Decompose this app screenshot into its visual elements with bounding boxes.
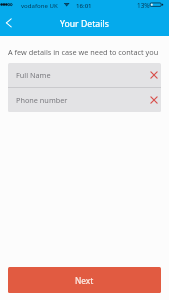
button[interactable]: Next bbox=[8, 267, 161, 293]
button[interactable]: Back bbox=[0, 11, 22, 36]
staticText: vodafone UK bbox=[21, 1, 58, 9]
staticText: Full Name bbox=[16, 70, 51, 80]
staticText: A few details in case we need to contact… bbox=[8, 47, 159, 57]
staticText: Next bbox=[75, 275, 94, 286]
staticText: Your Details bbox=[60, 18, 109, 30]
staticText: 13% bbox=[137, 1, 150, 10]
button[interactable]: Clear Phone number bbox=[147, 88, 161, 112]
button[interactable]: Full Name bbox=[8, 63, 161, 87]
button[interactable]: Phone number bbox=[8, 88, 161, 112]
staticText: Phone number bbox=[16, 95, 68, 105]
staticText: 16:01 bbox=[76, 1, 92, 9]
button[interactable]: Clear Full Name bbox=[147, 63, 161, 87]
